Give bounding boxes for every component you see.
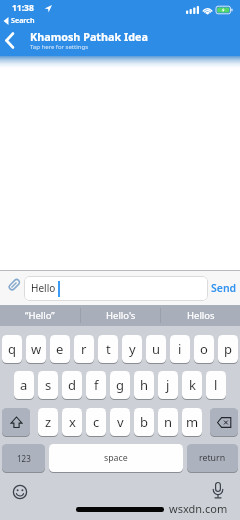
button[interactable]: z [38, 408, 58, 436]
button[interactable]: return [187, 444, 238, 472]
button[interactable] [10, 482, 30, 502]
button[interactable]: p [218, 335, 238, 363]
button[interactable]: e [50, 335, 70, 363]
button[interactable] [0, 30, 24, 52]
button[interactable]: t [98, 335, 118, 363]
button[interactable] [2, 408, 30, 436]
staticText: b [140, 413, 148, 431]
button[interactable]: j [158, 371, 178, 399]
staticText: Khamosh Pathak Idea [30, 29, 148, 44]
button[interactable]: i [170, 335, 190, 363]
staticText: x [69, 413, 76, 431]
button[interactable]: 123 [2, 444, 45, 472]
button[interactable]: x [62, 408, 82, 436]
button[interactable]: c [86, 408, 106, 436]
button[interactable]: Khamosh Pathak Idea [28, 29, 178, 55]
button[interactable] [208, 481, 228, 503]
button[interactable]: v [110, 408, 130, 436]
staticText: 11:38 [12, 2, 34, 14]
staticText: z [45, 413, 52, 431]
button[interactable]: l [206, 371, 226, 399]
button[interactable]: b [134, 408, 154, 436]
staticText: c [93, 413, 100, 431]
button[interactable]: a [14, 371, 34, 399]
staticText: v [117, 413, 124, 431]
button[interactable]: o [194, 335, 214, 363]
staticText: n [164, 413, 173, 431]
staticText: q [8, 340, 16, 358]
staticText: y [129, 340, 136, 358]
button[interactable]: k [182, 371, 202, 399]
button[interactable]: r [74, 335, 94, 363]
staticText: u [152, 340, 161, 358]
button[interactable]: Hellos [161, 305, 240, 326]
staticText: j [166, 376, 170, 394]
staticText: a [20, 376, 28, 394]
staticText: space [104, 452, 128, 464]
button[interactable]: Hello's [81, 305, 160, 326]
staticText: l [214, 376, 218, 394]
staticText: d [68, 376, 76, 394]
staticText: Tap here for settings [30, 43, 89, 51]
staticText: Hellos [187, 309, 215, 322]
button[interactable]: m [182, 408, 202, 436]
staticText: w [31, 340, 42, 358]
button[interactable]: “Hello” [0, 305, 80, 326]
button[interactable]: g [110, 371, 130, 399]
staticText: s [45, 376, 52, 394]
button[interactable]: d [62, 371, 82, 399]
button[interactable]: Send [208, 278, 240, 298]
button[interactable]: h [134, 371, 154, 399]
button[interactable]: space [49, 444, 183, 472]
staticText: p [224, 340, 232, 358]
staticText: 123 [17, 453, 31, 464]
staticText: h [140, 376, 149, 394]
staticText: return [199, 452, 226, 464]
staticText: f [94, 376, 99, 394]
staticText: t [106, 340, 111, 358]
staticText: Send [211, 281, 237, 295]
staticText: g [116, 376, 124, 394]
button[interactable] [210, 408, 238, 436]
button[interactable]: u [146, 335, 166, 363]
button[interactable]: s [38, 371, 58, 399]
staticText: wsxdn.com [169, 501, 228, 516]
button[interactable]: Hello [24, 276, 208, 301]
button[interactable]: y [122, 335, 142, 363]
button[interactable]: f [86, 371, 106, 399]
staticText: Hello's [106, 309, 136, 322]
button[interactable] [5, 276, 23, 294]
staticText: r [81, 340, 87, 358]
staticText: o [200, 340, 208, 358]
button[interactable]: q [2, 335, 22, 363]
staticText: k [189, 376, 196, 394]
staticText: i [178, 340, 182, 358]
staticText: “Hello” [25, 309, 55, 322]
staticText: Hello [31, 281, 56, 295]
button[interactable]: n [158, 408, 178, 436]
staticText: Search [11, 15, 35, 25]
staticText: m [186, 413, 199, 431]
button[interactable]: w [26, 335, 46, 363]
staticText: e [56, 340, 64, 358]
